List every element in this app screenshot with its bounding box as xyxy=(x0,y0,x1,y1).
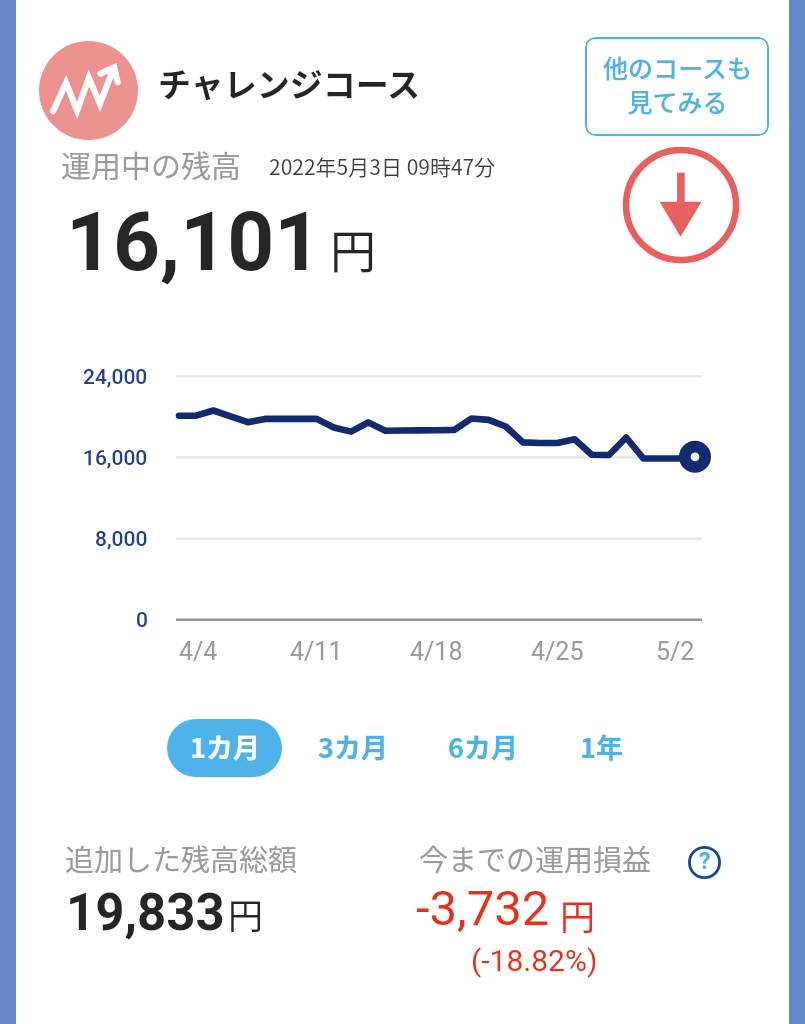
staticText: 今までの運用損益 xyxy=(419,837,652,879)
staticText: 0 xyxy=(136,608,148,633)
staticText: 5/2 xyxy=(656,637,695,666)
staticText: ? xyxy=(699,848,711,875)
staticText: -3,732 xyxy=(416,880,550,937)
staticText: 4/4 xyxy=(179,637,218,666)
staticText: 6カ月 xyxy=(448,727,518,766)
staticText: 他のコースも 見てみる xyxy=(603,49,752,119)
button[interactable]: 他のコースも 見てみる xyxy=(585,37,769,136)
staticText: (-18.82%) xyxy=(471,943,598,978)
staticText: 8,000 xyxy=(95,527,148,552)
staticText: 2022年5月3日 09時47分 xyxy=(269,151,496,181)
staticText: 1年 xyxy=(580,727,623,766)
staticText: 運用中の残高 xyxy=(61,142,241,185)
staticText: 19,833 xyxy=(66,883,225,943)
staticText: 円 xyxy=(228,888,264,939)
staticText: 4/25 xyxy=(531,637,584,666)
staticText: 16,000 xyxy=(83,446,148,471)
staticText: 4/11 xyxy=(290,637,343,666)
button[interactable]: 1カ月 xyxy=(167,719,282,777)
staticText: チャレンジコース xyxy=(158,59,421,107)
staticText: 24,000 xyxy=(83,365,148,390)
staticText: 16,101 xyxy=(66,194,322,290)
staticText: 3カ月 xyxy=(318,727,388,766)
button[interactable]: 3カ月 xyxy=(295,717,411,775)
button[interactable]: 6カ月 xyxy=(425,717,541,775)
staticText: 1カ月 xyxy=(190,727,260,766)
staticText: 円 xyxy=(330,215,376,282)
button[interactable]: 1年 xyxy=(555,717,648,775)
button[interactable]: 入金する xyxy=(622,146,740,264)
staticText: 円 xyxy=(560,889,596,940)
staticText: 4/18 xyxy=(410,637,463,666)
button[interactable]: ヘルプ xyxy=(688,846,721,879)
staticText: 追加した残高総額 xyxy=(65,837,298,879)
